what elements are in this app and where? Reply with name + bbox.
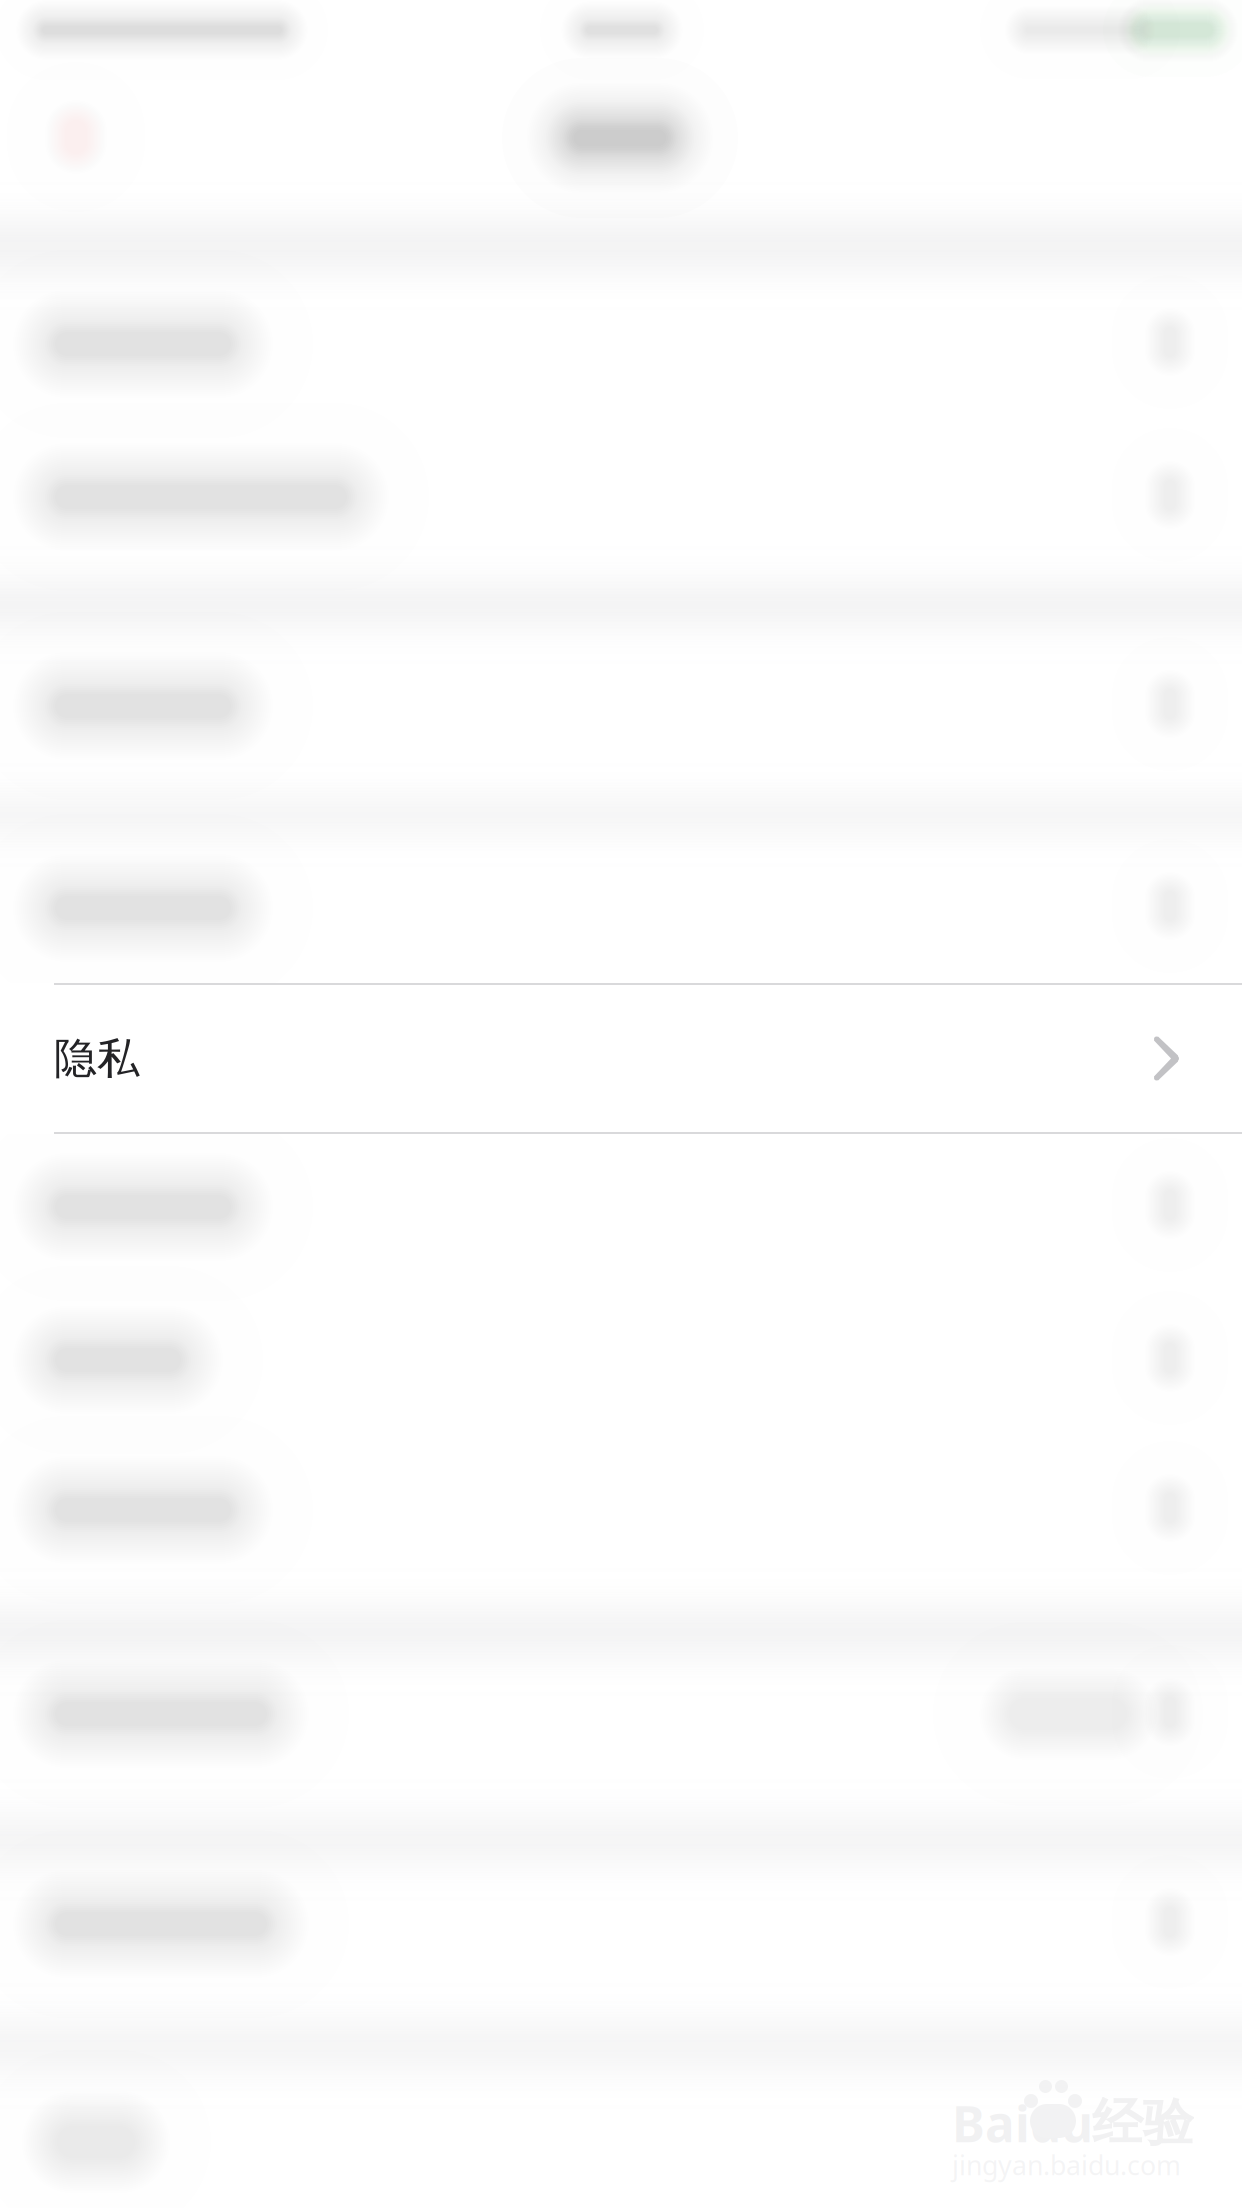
- staticText: 经验: [1092, 2092, 1194, 2154]
- staticText: 隐私: [54, 1032, 140, 1085]
- staticText: jingyan.baidu.com: [952, 2147, 1181, 2183]
- button[interactable]: 隐私: [0, 983, 1242, 1134]
- staticText: Baidu: [952, 2090, 1093, 2156]
